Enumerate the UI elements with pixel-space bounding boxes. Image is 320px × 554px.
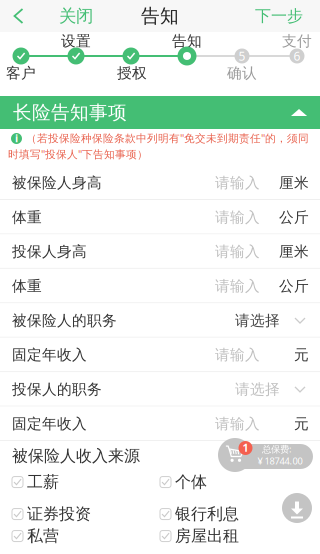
staticText: 授权	[117, 64, 147, 82]
button[interactable]: 长险告知事项	[0, 96, 320, 129]
staticText: 体重	[12, 277, 42, 295]
button[interactable]: 固定年收入	[0, 407, 320, 441]
staticText: 投保人身高	[12, 243, 87, 261]
staticText: 设置	[61, 32, 91, 50]
staticText: 投保人的职务	[12, 380, 102, 398]
button[interactable]: 个体	[160, 472, 308, 492]
button[interactable]: 银行利息	[160, 504, 308, 524]
staticText: 固定年收入	[12, 415, 87, 433]
staticText: 被保险人收入来源	[12, 446, 140, 466]
button[interactable]: 被保险人身高	[0, 166, 320, 200]
staticText: 请输入	[215, 174, 260, 192]
staticText: 固定年收入	[12, 346, 87, 364]
staticText: （若投保险种保险条款中列明有"免交未到期责任"的，须同	[26, 131, 309, 145]
staticText: i	[15, 131, 18, 145]
staticText: 下一步	[255, 6, 303, 26]
button[interactable]: 下一步	[251, 0, 307, 32]
button[interactable]: 证券投资	[12, 504, 160, 524]
staticText: 个体	[175, 472, 207, 492]
staticText: 证券投资	[27, 504, 91, 524]
staticText: 银行利息	[175, 504, 239, 524]
staticText: 请输入	[215, 277, 260, 295]
staticText: 总保费:	[262, 443, 292, 455]
staticText: 被保险人的职务	[12, 311, 117, 329]
staticText: 客户	[6, 64, 36, 82]
staticText: 公斤	[279, 208, 309, 226]
staticText: 时填写"投保人"下告知事项）	[8, 147, 148, 161]
staticText: 请输入	[215, 208, 260, 226]
button[interactable]: 被保险人的职务	[0, 303, 320, 338]
staticText: 工薪	[27, 472, 59, 492]
staticText: 请输入	[215, 415, 260, 433]
button[interactable]: 购物车 总保费 18744.00	[218, 436, 314, 472]
staticText: 告知	[172, 32, 202, 50]
button[interactable]: 体重	[0, 269, 320, 303]
button[interactable]: 工薪	[12, 472, 160, 492]
button[interactable]: 投保人身高	[0, 234, 320, 269]
staticText: 私营	[27, 526, 59, 546]
staticText: 请选择	[235, 311, 280, 329]
staticText: 元	[294, 346, 309, 364]
staticText: 告知	[141, 4, 179, 27]
staticText: 公斤	[279, 277, 309, 295]
staticText: 请输入	[215, 346, 260, 364]
staticText: 5	[238, 48, 245, 64]
staticText: 6	[293, 48, 300, 64]
staticText: 请输入	[215, 243, 260, 261]
staticText: 体重	[12, 208, 42, 226]
button[interactable]: 投保人的职务	[0, 372, 320, 407]
staticText: 长险告知事项	[13, 101, 127, 124]
button[interactable]: 私营	[12, 526, 160, 546]
staticText: 请选择	[235, 380, 280, 398]
staticText: 确认	[227, 64, 257, 82]
button[interactable]: 下载	[282, 493, 312, 523]
button[interactable]: 房屋出租	[160, 526, 308, 546]
staticText: 被保险人身高	[12, 174, 102, 192]
staticText: 厘米	[279, 174, 309, 192]
staticText: 元	[294, 415, 309, 433]
button[interactable]: 体重	[0, 200, 320, 234]
staticText: 房屋出租	[175, 526, 239, 546]
staticText: 关闭	[59, 5, 93, 27]
button[interactable]: 关闭	[53, 0, 99, 32]
button[interactable]: 返回	[5, 0, 33, 32]
staticText: 1	[242, 440, 248, 455]
staticText: 支付	[282, 32, 312, 50]
button[interactable]: 固定年收入	[0, 338, 320, 372]
staticText: ¥ 18744.00	[257, 455, 302, 467]
staticText: 厘米	[279, 243, 309, 261]
